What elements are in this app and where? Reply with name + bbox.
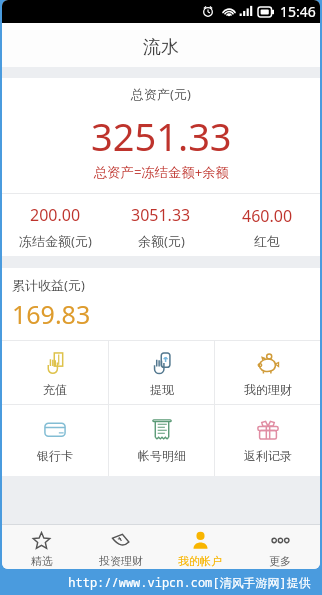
- staticText: 充值: [43, 382, 67, 397]
- button[interactable]: 3051.33: [108, 194, 214, 256]
- staticText: 我的理财: [244, 382, 292, 397]
- staticText: 总资产(元): [131, 85, 191, 103]
- staticText: 余额(元): [138, 232, 185, 250]
- button[interactable]: 提现: [109, 341, 214, 404]
- button[interactable]: 我的理财: [215, 341, 320, 404]
- staticText: 3051.33: [131, 204, 191, 226]
- button[interactable]: 460.00: [214, 194, 320, 256]
- staticText: 累计收益(元): [12, 276, 85, 294]
- staticText: 总资产=冻结金额+余额: [94, 163, 229, 181]
- button[interactable]: 返利记录: [215, 405, 320, 476]
- button[interactable]: 流水: [2, 23, 320, 67]
- button[interactable]: 充值: [2, 341, 108, 404]
- button[interactable]: 我的帐户: [160, 525, 240, 569]
- button[interactable]: 投资理财: [81, 525, 160, 569]
- staticText: http://www.vipcn.com[清风手游网]提供: [68, 574, 311, 590]
- staticText: 精选: [31, 554, 53, 568]
- staticText: 投资理财: [99, 554, 143, 568]
- button[interactable]: 200.00: [2, 194, 108, 256]
- button[interactable]: 帐号明细: [109, 405, 214, 476]
- staticText: 红包: [254, 233, 280, 249]
- staticText: 15:46: [280, 2, 316, 21]
- button[interactable]: 银行卡: [2, 405, 108, 476]
- staticText: 169.83: [12, 297, 91, 331]
- staticText: 3251.33: [91, 110, 232, 162]
- staticText: 银行卡: [37, 448, 73, 463]
- staticText: 流水: [143, 36, 179, 59]
- staticText: 冻结金额(元): [19, 232, 92, 250]
- staticText: 提现: [150, 382, 174, 397]
- staticText: 更多: [269, 554, 291, 568]
- staticText: 200.00: [30, 204, 81, 226]
- staticText: 返利记录: [244, 448, 292, 463]
- staticText: 460.00: [242, 205, 293, 227]
- button[interactable]: 更多: [240, 525, 320, 569]
- staticText: 我的帐户: [178, 554, 222, 568]
- staticText: 帐号明细: [138, 448, 186, 463]
- button[interactable]: 精选: [2, 525, 81, 569]
